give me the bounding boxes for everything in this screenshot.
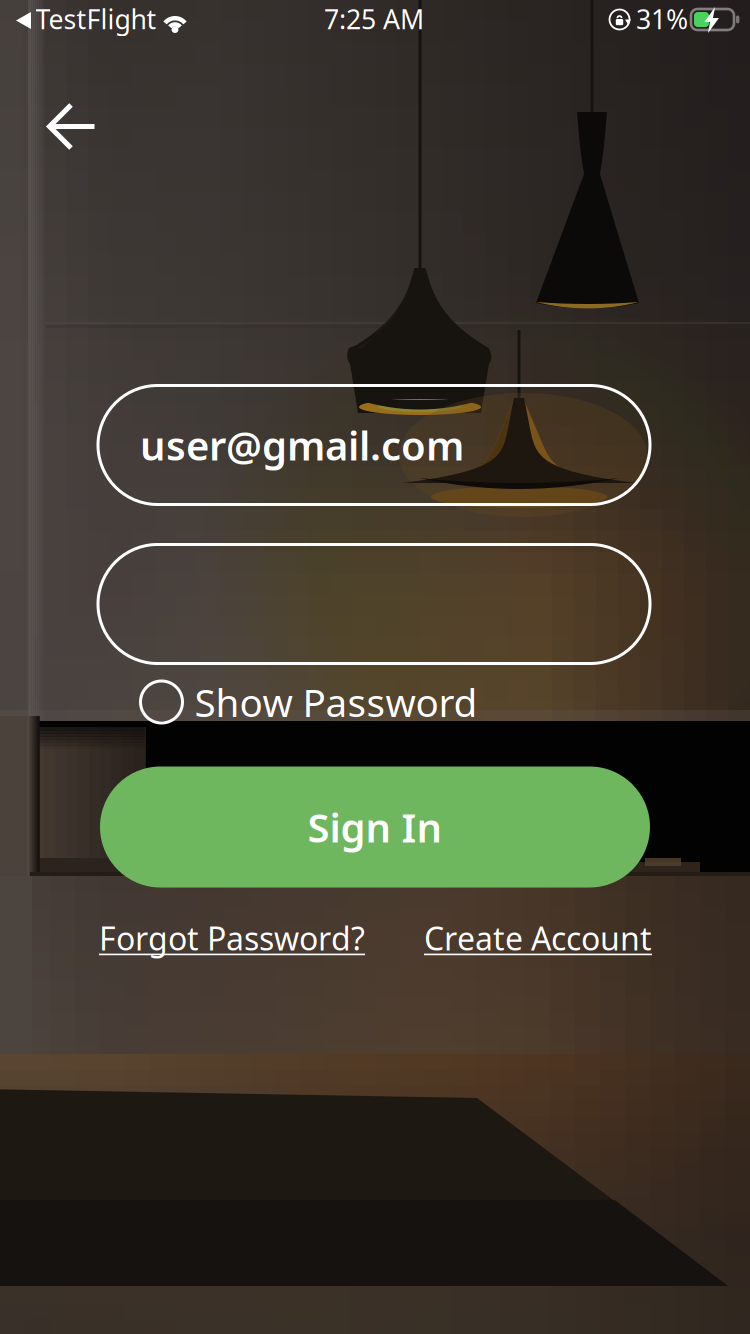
staticText: Sign In bbox=[307, 800, 442, 853]
staticText: Create Account bbox=[424, 917, 652, 959]
staticText: Show Password bbox=[194, 676, 477, 728]
staticText: TestFlight bbox=[35, 1, 156, 37]
staticText: 31% bbox=[636, 1, 688, 37]
button[interactable]: user@gmail.com bbox=[98, 385, 650, 504]
button[interactable]: Password bbox=[98, 544, 650, 663]
button[interactable]: Back bbox=[37, 94, 107, 160]
button[interactable]: Sign In bbox=[100, 766, 650, 887]
staticText: Forgot Password? bbox=[99, 917, 365, 959]
staticText: user@gmail.com bbox=[140, 418, 464, 471]
staticText: 7:25 AM bbox=[324, 1, 424, 37]
button[interactable]: Show Password bbox=[140, 676, 477, 728]
button[interactable]: Forgot Password? bbox=[99, 914, 365, 962]
button[interactable]: Create Account bbox=[424, 914, 652, 962]
